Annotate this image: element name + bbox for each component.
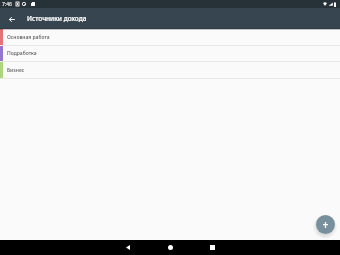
button[interactable]: Подработка xyxy=(0,46,340,61)
staticText: Бизнес xyxy=(7,67,25,74)
button[interactable]: Бизнес xyxy=(0,62,340,78)
button[interactable]: Основная работа xyxy=(0,29,340,45)
staticText: Подработка xyxy=(7,50,37,57)
button[interactable]: Back xyxy=(120,240,136,255)
staticText: Основная работа xyxy=(7,34,50,41)
staticText: Источники дохода xyxy=(27,14,87,23)
staticText: 7:46 xyxy=(2,1,12,8)
button[interactable]: Добавить источник дохода xyxy=(316,215,335,234)
button[interactable]: Home xyxy=(162,240,178,255)
button[interactable]: Назад xyxy=(4,8,20,29)
button[interactable]: Recents xyxy=(204,240,220,255)
